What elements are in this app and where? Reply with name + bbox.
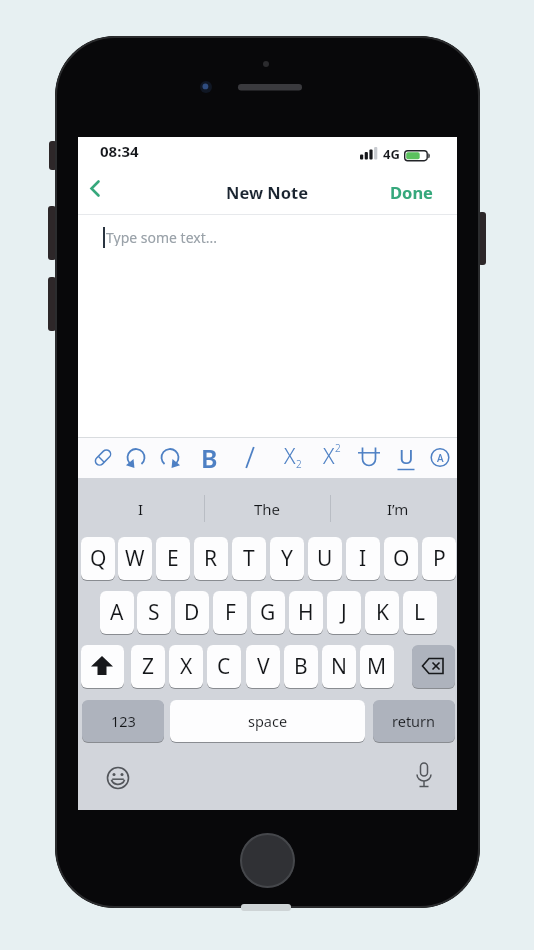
button[interactable]: H	[289, 591, 323, 634]
staticText: O	[393, 544, 410, 573]
staticText: return	[392, 711, 436, 731]
staticText: H	[298, 598, 314, 627]
staticText: I’m	[387, 499, 409, 519]
staticText: I	[359, 544, 367, 573]
button[interactable]	[412, 645, 455, 688]
button[interactable]: S	[137, 591, 171, 634]
staticText: K	[376, 598, 389, 627]
button[interactable]	[235, 440, 265, 475]
staticText: X	[284, 442, 296, 471]
button[interactable]: Z	[131, 645, 165, 688]
staticText: I	[138, 499, 144, 519]
button[interactable]: I’m	[355, 499, 440, 519]
button[interactable]: P	[422, 537, 456, 580]
staticText: Done	[390, 181, 433, 201]
staticText: B	[201, 441, 218, 475]
button[interactable]	[121, 440, 151, 475]
staticText: 2	[296, 457, 302, 471]
staticText: Z	[142, 652, 155, 681]
button[interactable]: Q	[81, 537, 115, 580]
staticText: The	[254, 499, 281, 519]
staticText: B	[294, 652, 308, 681]
button[interactable]: E	[156, 537, 190, 580]
button[interactable]: J	[327, 591, 361, 634]
staticText: R	[204, 544, 218, 573]
button[interactable]: Done	[380, 181, 442, 201]
button[interactable]: B	[195, 439, 223, 476]
button[interactable]: N	[322, 645, 356, 688]
staticText: 4G	[383, 145, 400, 163]
staticText: V	[257, 652, 270, 681]
staticText: J	[341, 598, 347, 627]
button[interactable]: G	[251, 591, 285, 634]
button[interactable]: F	[213, 591, 247, 634]
button[interactable]	[354, 440, 384, 475]
staticText: U	[317, 544, 333, 573]
staticText: E	[167, 544, 179, 573]
button[interactable]: O	[384, 537, 418, 580]
staticText: N	[331, 652, 347, 681]
button[interactable]: Y	[270, 537, 304, 580]
button[interactable]: A	[100, 591, 134, 634]
button[interactable]: V	[246, 645, 280, 688]
staticText: C	[217, 652, 231, 681]
button[interactable]: space	[170, 700, 365, 742]
button[interactable]: X	[169, 645, 203, 688]
staticText: 2	[335, 441, 341, 455]
staticText: Q	[90, 544, 107, 573]
button[interactable]: I	[98, 499, 183, 519]
button[interactable]	[425, 440, 455, 475]
staticText: 08:34	[100, 141, 139, 159]
staticText: D	[184, 598, 200, 627]
staticText: 123	[111, 711, 136, 731]
button[interactable]: D	[175, 591, 209, 634]
staticText: Y	[281, 544, 293, 573]
staticText: New Note	[226, 181, 309, 201]
button[interactable]: 123	[82, 700, 164, 742]
button[interactable]	[88, 440, 118, 475]
button[interactable]: K	[365, 591, 399, 634]
staticText: A	[110, 598, 124, 627]
button[interactable]: B	[284, 645, 318, 688]
button[interactable]: L	[403, 591, 437, 634]
button[interactable]: C	[207, 645, 241, 688]
button[interactable]: T	[232, 537, 266, 580]
staticText: X	[323, 442, 335, 471]
staticText: space	[248, 711, 288, 731]
staticText: S	[148, 598, 160, 627]
button[interactable]	[82, 177, 112, 205]
staticText: M	[367, 652, 387, 681]
staticText: U	[399, 443, 414, 470]
button[interactable]	[102, 762, 134, 794]
button[interactable]: The	[225, 499, 310, 519]
staticText: X	[180, 652, 193, 681]
button[interactable]	[240, 833, 295, 888]
button[interactable]	[409, 760, 439, 794]
staticText: Type some text...	[106, 228, 217, 246]
button[interactable]	[155, 440, 185, 475]
staticText: A	[437, 451, 444, 465]
staticText: P	[433, 544, 446, 573]
staticText: W	[125, 544, 145, 573]
staticText: F	[225, 598, 236, 627]
button[interactable]: W	[118, 537, 152, 580]
button[interactable]: R	[194, 537, 228, 580]
button[interactable]: U	[308, 537, 342, 580]
button[interactable]: return	[373, 700, 455, 742]
staticText: L	[414, 598, 426, 627]
staticText: G	[260, 598, 276, 627]
button[interactable]	[81, 645, 124, 688]
staticText: T	[243, 544, 255, 573]
button[interactable]: M	[360, 645, 394, 688]
button[interactable]: I	[346, 537, 380, 580]
